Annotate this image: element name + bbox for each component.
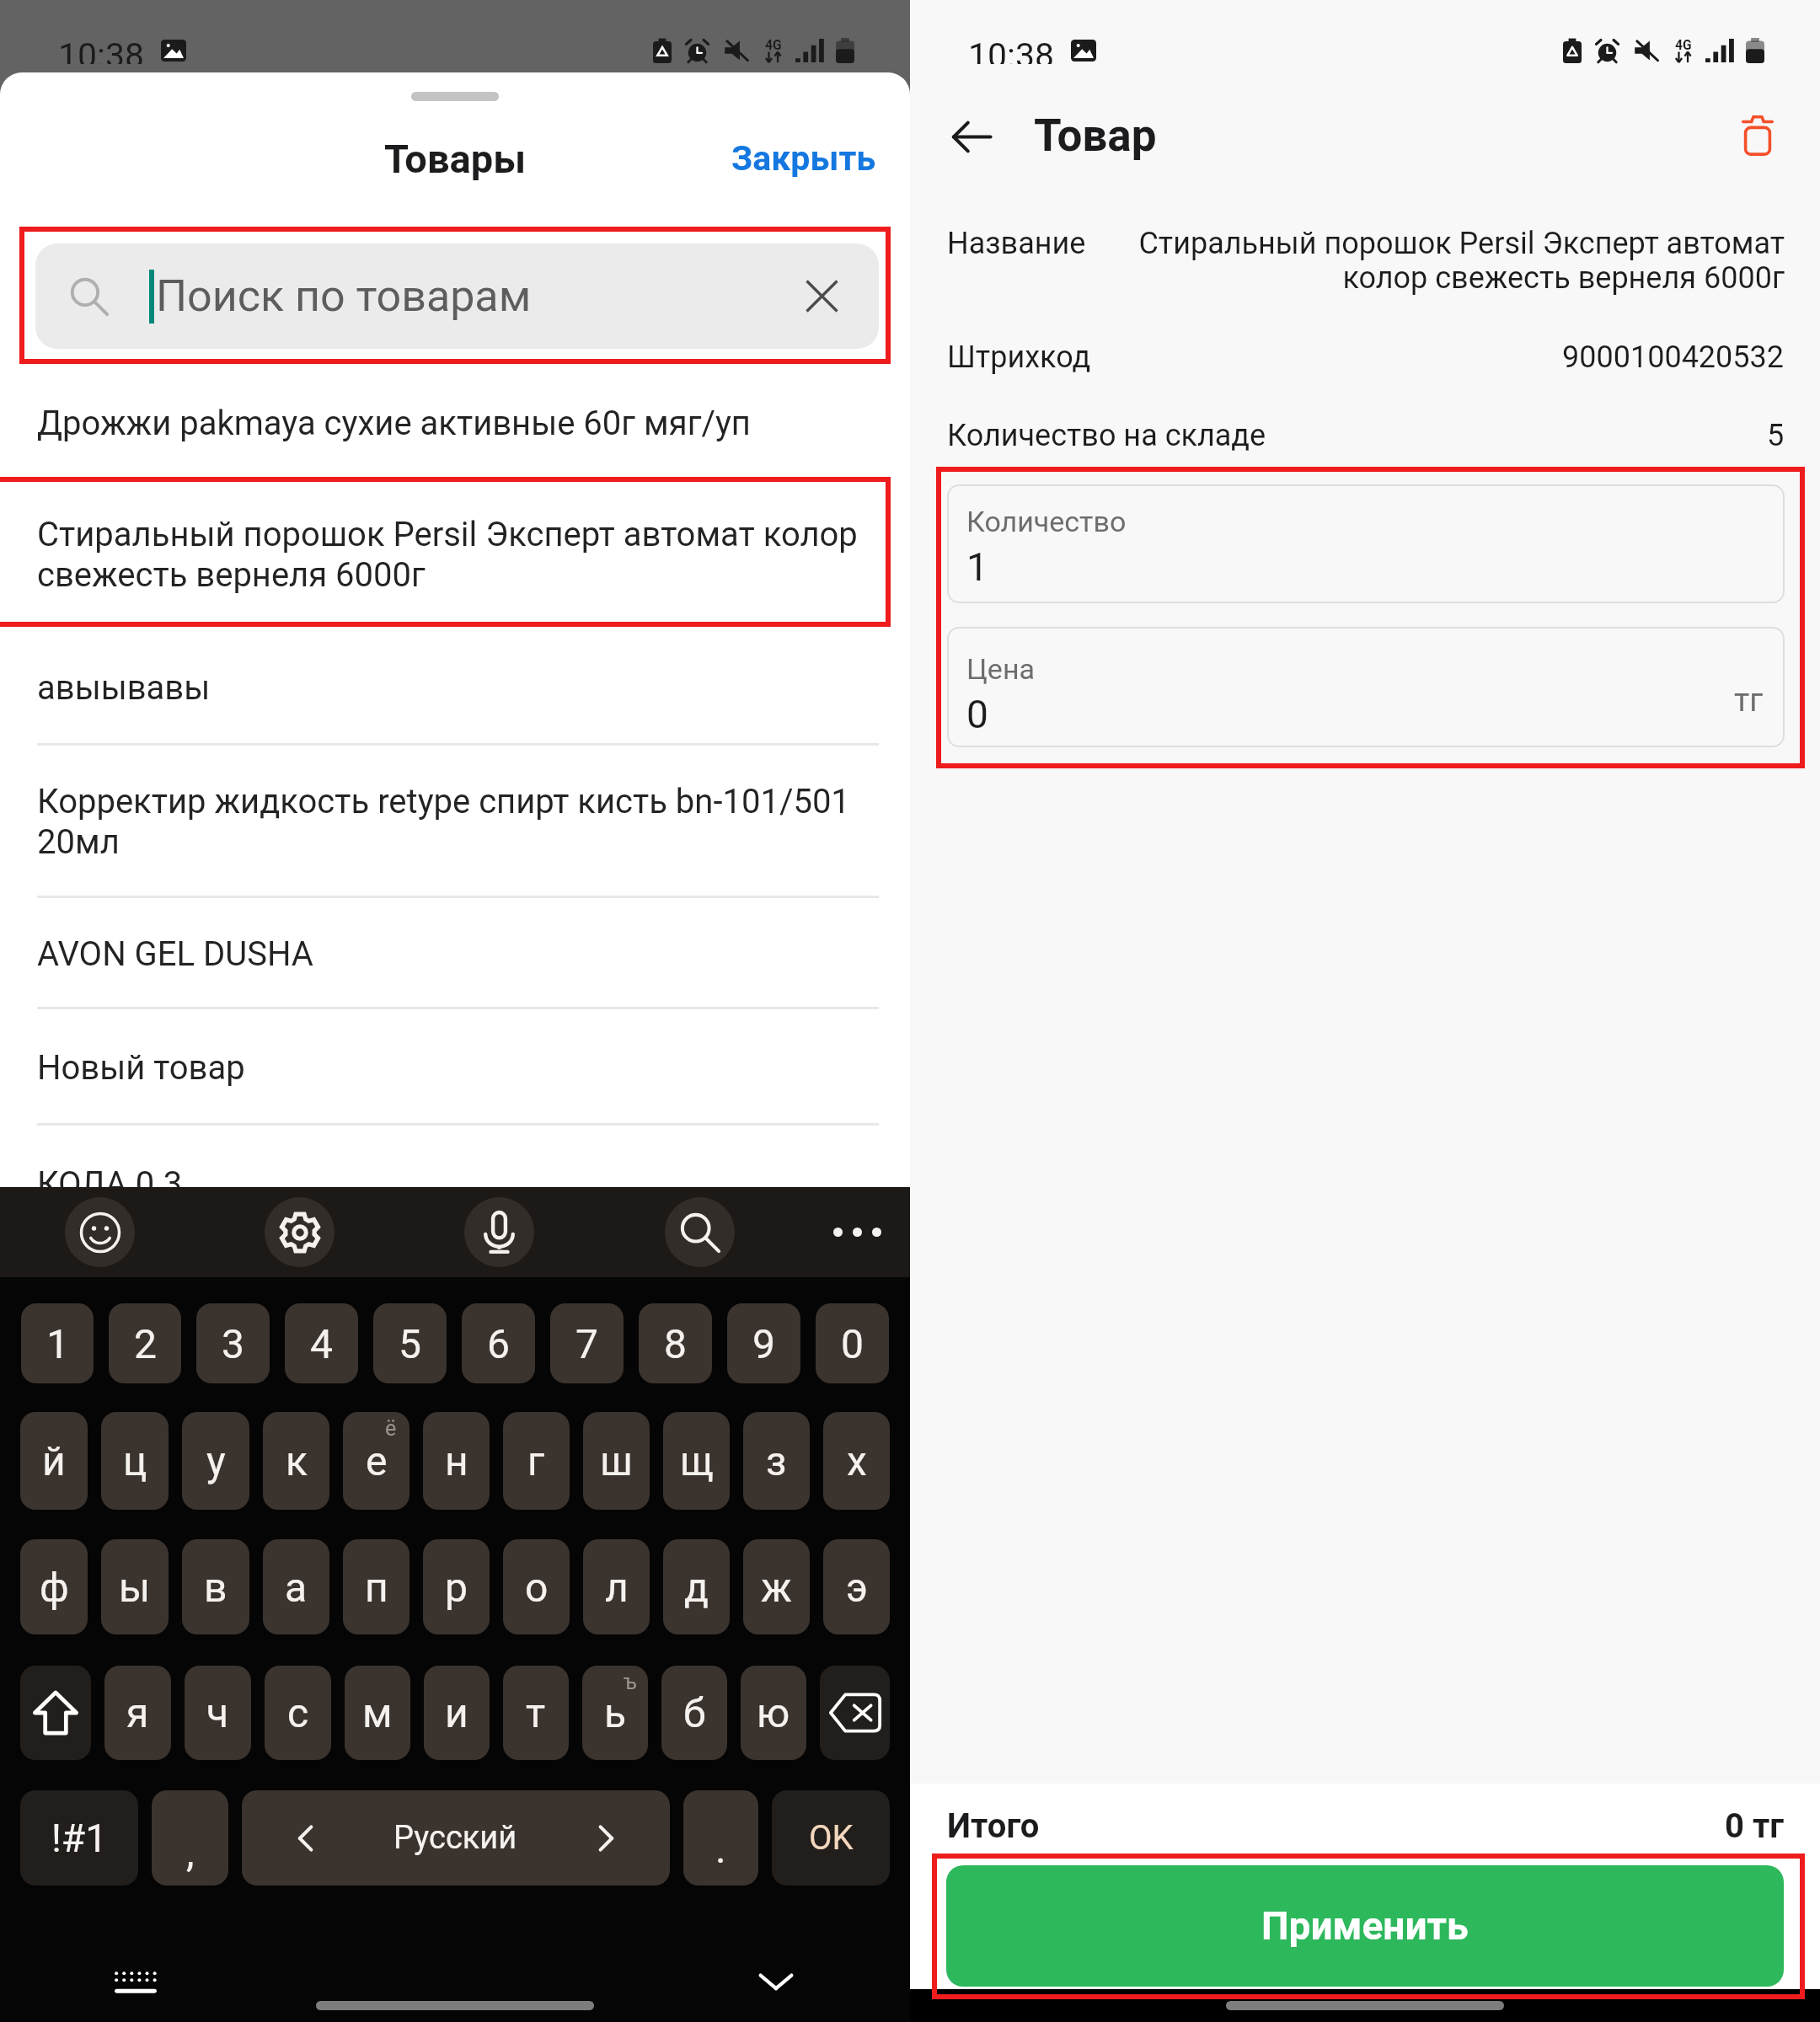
- button[interactable]: б: [661, 1666, 727, 1760]
- button[interactable]: Русский: [242, 1790, 670, 1886]
- staticText: ю: [757, 1689, 790, 1736]
- staticText: з: [766, 1437, 787, 1484]
- button[interactable]: КОЛА 0.3: [0, 1123, 910, 1239]
- button[interactable]: ж: [743, 1539, 810, 1634]
- staticText: х: [847, 1437, 867, 1484]
- button[interactable]: к: [263, 1412, 329, 1510]
- button[interactable]: х: [823, 1412, 890, 1510]
- staticText: Закрыть: [731, 138, 876, 179]
- staticText: ь: [604, 1689, 627, 1736]
- staticText: с: [287, 1689, 309, 1736]
- staticText: ы: [119, 1564, 151, 1611]
- button[interactable]: Settings: [265, 1197, 335, 1267]
- button[interactable]: авыывавы: [0, 627, 910, 743]
- button[interactable]: 1: [21, 1303, 94, 1383]
- button[interactable]: о: [503, 1539, 570, 1634]
- button[interactable]: Hide keyboard: [742, 1947, 810, 2014]
- staticText: Товары: [384, 136, 527, 182]
- button[interactable]: Поиск по товарам: [35, 243, 879, 349]
- button[interactable]: с: [265, 1666, 331, 1760]
- staticText: Штрихкод: [947, 340, 1091, 375]
- staticText: тг: [1734, 682, 1764, 719]
- staticText: б: [683, 1689, 706, 1736]
- staticText: 6: [487, 1320, 510, 1367]
- button[interactable]: ы: [101, 1539, 169, 1634]
- staticText: Дрожжи pakmaya сухие активные 60г мяг/уп: [37, 404, 751, 443]
- staticText: и: [445, 1689, 468, 1736]
- staticText: КОЛА 0.3: [37, 1164, 183, 1204]
- button[interactable]: э: [823, 1539, 890, 1634]
- button[interactable]: д: [663, 1539, 730, 1634]
- button[interactable]: ц: [101, 1412, 169, 1510]
- staticText: Итого: [947, 1806, 1040, 1846]
- button[interactable]: л: [583, 1539, 650, 1634]
- button[interactable]: Применить: [946, 1865, 1784, 1987]
- staticText: 7: [575, 1320, 598, 1367]
- button[interactable]: ф: [20, 1539, 88, 1634]
- button[interactable]: п: [343, 1539, 409, 1634]
- button[interactable]: Backspace: [820, 1666, 890, 1760]
- button[interactable]: я: [104, 1666, 171, 1760]
- button[interactable]: Back: [935, 100, 1008, 173]
- button[interactable]: Voice input: [464, 1197, 534, 1267]
- button[interactable]: 2: [109, 1303, 181, 1383]
- button[interactable]: м: [345, 1666, 410, 1760]
- staticText: Поиск по товарам: [156, 270, 532, 322]
- button[interactable]: ю: [741, 1666, 806, 1760]
- staticText: у: [206, 1437, 226, 1484]
- button[interactable]: Search: [665, 1197, 735, 1267]
- button[interactable]: AVON GEL DUSHA: [0, 896, 910, 1007]
- button[interactable]: 7: [550, 1303, 624, 1383]
- button[interactable]: ,: [152, 1790, 228, 1886]
- button[interactable]: 3: [196, 1303, 270, 1383]
- button[interactable]: Switch keyboard: [102, 1947, 169, 2014]
- button[interactable]: 9: [727, 1303, 800, 1383]
- button[interactable]: 4: [285, 1303, 358, 1383]
- staticText: 10:38: [58, 35, 145, 64]
- button[interactable]: Дрожжи pakmaya сухие активные 60г мяг/уп: [0, 364, 910, 477]
- staticText: я: [126, 1689, 149, 1736]
- button[interactable]: т: [503, 1666, 569, 1760]
- staticText: ъ: [624, 1670, 637, 1694]
- staticText: Новый товар: [37, 1048, 245, 1088]
- button[interactable]: н: [423, 1412, 490, 1510]
- button[interactable]: Новый товар: [0, 1007, 910, 1123]
- button[interactable]: у: [182, 1412, 249, 1510]
- button[interactable]: Shift: [20, 1666, 91, 1760]
- button[interactable]: ш: [583, 1412, 650, 1510]
- button[interactable]: Закрыть: [698, 125, 910, 192]
- button[interactable]: р: [423, 1539, 490, 1634]
- staticText: 3: [222, 1320, 244, 1367]
- button[interactable]: 6: [462, 1303, 535, 1383]
- button[interactable]: Delete: [1721, 99, 1795, 173]
- button[interactable]: г: [503, 1412, 570, 1510]
- button[interactable]: е: [343, 1412, 409, 1510]
- staticText: й: [42, 1437, 66, 1484]
- staticText: Русский: [393, 1819, 517, 1857]
- button[interactable]: .: [683, 1790, 758, 1886]
- button[interactable]: 0: [816, 1303, 889, 1383]
- staticText: ч: [206, 1689, 229, 1736]
- button[interactable]: More: [822, 1187, 892, 1277]
- button[interactable]: Количество: [947, 484, 1785, 603]
- button[interactable]: Emoji: [65, 1197, 135, 1267]
- button[interactable]: OK: [772, 1790, 890, 1886]
- button[interactable]: и: [424, 1666, 490, 1760]
- button[interactable]: 8: [639, 1303, 712, 1383]
- button[interactable]: Стиральный порошок Persil Эксперт автома…: [0, 477, 910, 627]
- staticText: г: [527, 1437, 545, 1484]
- button[interactable]: в: [182, 1539, 249, 1634]
- button[interactable]: ь: [582, 1666, 648, 1760]
- button[interactable]: щ: [663, 1412, 730, 1510]
- button[interactable]: Цена: [947, 627, 1785, 747]
- staticText: Применить: [1261, 1903, 1469, 1949]
- staticText: Количество на складе: [947, 418, 1266, 453]
- button[interactable]: Корректир жидкость retype спирт кисть bn…: [0, 743, 910, 896]
- button[interactable]: з: [743, 1412, 810, 1510]
- staticText: м: [362, 1689, 393, 1736]
- button[interactable]: а: [263, 1539, 329, 1634]
- button[interactable]: !#1: [20, 1790, 138, 1886]
- button[interactable]: 5: [373, 1303, 447, 1383]
- button[interactable]: ч: [185, 1666, 251, 1760]
- button[interactable]: й: [20, 1412, 88, 1510]
